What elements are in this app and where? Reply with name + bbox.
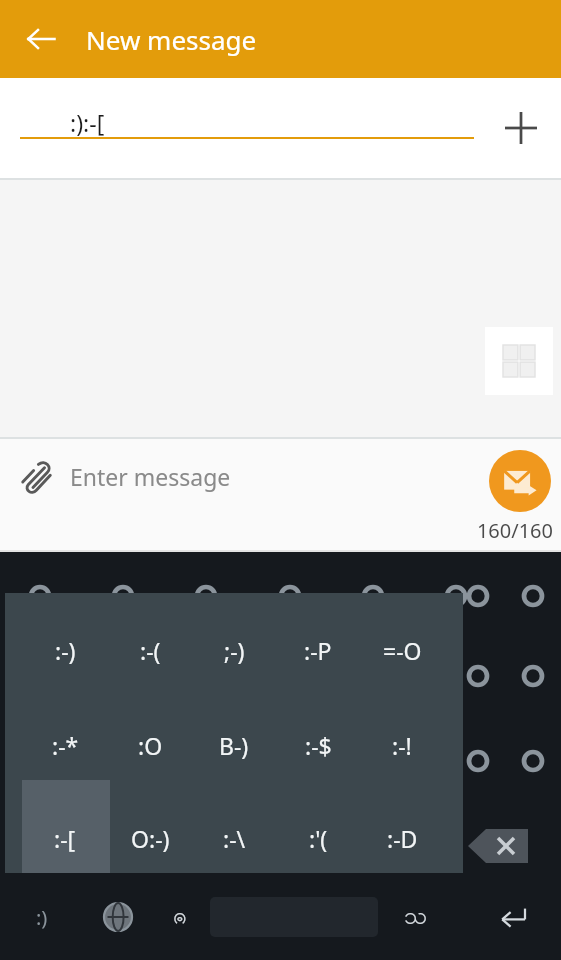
button[interactable]: Enter (487, 891, 539, 943)
button[interactable]: O:-) (108, 796, 192, 880)
button[interactable]: Add recipient (491, 98, 551, 158)
button[interactable]: Send (489, 450, 551, 512)
staticText: B-) (219, 730, 249, 761)
staticText: 160/160 (476, 517, 553, 544)
button[interactable]: :-P (276, 608, 360, 692)
staticText: :-$ (305, 730, 332, 761)
button[interactable]: Attach (8, 451, 62, 505)
staticText: :) (36, 904, 48, 931)
button[interactable]: :-$ (276, 703, 360, 787)
button[interactable]: :-[ (23, 796, 107, 880)
staticText: :-P (304, 635, 332, 666)
staticText: :-( (140, 635, 161, 666)
staticText: :O (138, 730, 163, 761)
staticText: သ (404, 900, 428, 935)
button[interactable]: Key (392, 893, 440, 941)
staticText: :-! (392, 730, 412, 761)
staticText: New message (86, 22, 257, 57)
button[interactable]: :-( (108, 608, 192, 692)
staticText: ၐ (173, 900, 187, 935)
button[interactable]: :-) (23, 608, 107, 692)
staticText: =-O (383, 635, 422, 666)
button[interactable]: Back (14, 12, 68, 66)
staticText: O:-) (131, 823, 170, 854)
button[interactable]: Key (156, 893, 204, 941)
staticText: :-D (387, 823, 418, 854)
button[interactable]: :O (108, 703, 192, 787)
staticText: :-) (55, 635, 76, 666)
staticText: Enter message (70, 461, 231, 492)
staticText: :-[ (54, 823, 76, 854)
button[interactable]: :-D (360, 796, 444, 880)
staticText: :'( (309, 823, 328, 854)
staticText: :-* (52, 730, 79, 761)
button[interactable]: B-) (192, 703, 276, 787)
button[interactable]: Change language (92, 891, 144, 943)
button[interactable]: Templates (485, 327, 553, 395)
button[interactable]: =-O (360, 608, 444, 692)
staticText: ;-) (224, 635, 245, 666)
staticText: :-\ (223, 823, 246, 854)
staticText: :):-[ (70, 107, 105, 138)
button[interactable]: :-\ (192, 796, 276, 880)
button[interactable]: ;-) (192, 608, 276, 692)
button[interactable]: :-* (23, 703, 107, 787)
button[interactable]: :'( (276, 796, 360, 880)
button[interactable]: :-! (360, 703, 444, 787)
button[interactable]: Emoji (18, 893, 66, 941)
